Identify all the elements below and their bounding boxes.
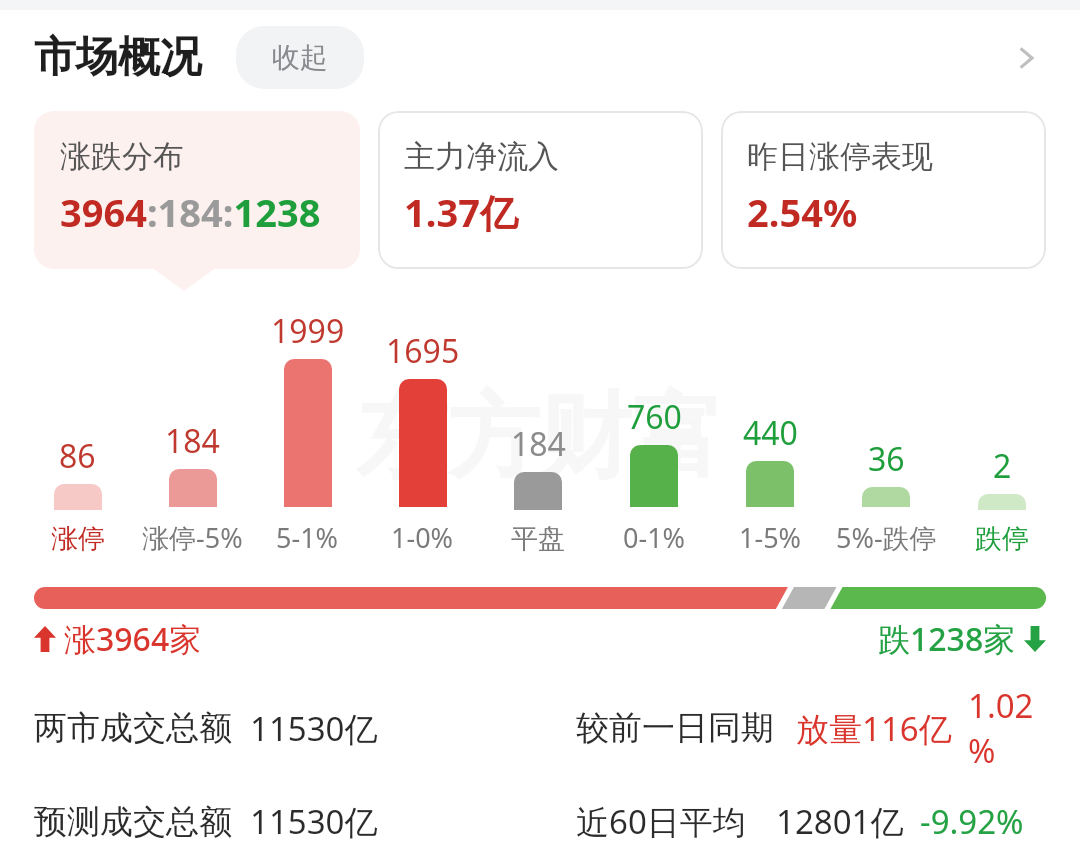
staticText: 760 <box>627 395 682 439</box>
staticText: 1-0% <box>391 519 454 556</box>
staticText: 5%-跌停 <box>836 519 937 556</box>
staticText: 涨停-5% <box>142 519 243 556</box>
button[interactable]: 主力净流入 <box>378 111 703 269</box>
staticText: 184 <box>511 422 566 466</box>
staticText: 跌停 <box>975 522 1029 556</box>
button[interactable]: 涨跌分布 <box>34 111 360 269</box>
staticText: 收起 <box>272 40 328 75</box>
staticText: 5-1% <box>276 519 339 556</box>
staticText: 平盘 <box>511 522 565 556</box>
staticText: 3964:184:1238 <box>60 186 321 238</box>
staticText: 0-1% <box>623 519 686 556</box>
staticText: 86 <box>59 434 96 478</box>
staticText: 11530亿 <box>250 706 378 751</box>
staticText: 放量116亿 <box>796 706 952 751</box>
staticText: 36 <box>868 437 905 481</box>
staticText: 昨日涨停表现 <box>747 137 933 176</box>
staticText: 2.54% <box>747 186 858 238</box>
staticText: 主力净流入 <box>404 137 559 176</box>
staticText: 涨跌分布 <box>60 137 184 176</box>
staticText: 11530亿 <box>250 799 378 844</box>
button[interactable]: 收起 <box>236 26 364 89</box>
staticText: 预测成交总额 <box>34 801 232 843</box>
staticText: -9.92% <box>920 799 1024 844</box>
staticText: 1.02% <box>968 683 1046 773</box>
staticText: 东方财富 <box>356 379 724 495</box>
staticText: 12801亿 <box>776 799 904 844</box>
button[interactable]: More <box>998 30 1054 86</box>
staticText: 2 <box>993 444 1012 488</box>
staticText: 较前一日同期 <box>576 707 774 749</box>
staticText: 1.37亿 <box>404 186 518 238</box>
staticText: 涨3964家 <box>64 617 202 661</box>
staticText: 近60日平均 <box>576 799 746 844</box>
staticText: 440 <box>743 411 798 455</box>
staticText: 市场概况 <box>34 31 202 84</box>
staticText: 两市成交总额 <box>34 707 232 749</box>
staticText: 1-5% <box>739 519 802 556</box>
staticText: 涨停 <box>51 522 105 556</box>
button[interactable]: 昨日涨停表现 <box>721 111 1046 269</box>
staticText: 跌1238家 <box>878 617 1016 661</box>
staticText: 1999 <box>271 309 345 353</box>
staticText: 184 <box>165 419 220 463</box>
staticText: 1695 <box>386 329 460 373</box>
